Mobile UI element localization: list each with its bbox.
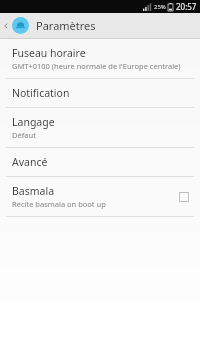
button[interactable]: Back xyxy=(0,13,12,38)
button[interactable]: Notification xyxy=(0,79,200,107)
staticText: 20:57 xyxy=(176,1,197,12)
staticText: Recite basmala on boot up xyxy=(12,199,106,209)
staticText: GMT+0100 (heure normale de l'Europe cent… xyxy=(12,61,181,71)
staticText: Langage xyxy=(12,115,55,129)
staticText: Défaut xyxy=(12,130,36,140)
button[interactable]: Basmala xyxy=(0,177,200,216)
staticText: Paramètres xyxy=(36,18,96,33)
staticText: Fuseau horaire xyxy=(12,46,86,60)
staticText: Basmala xyxy=(12,184,55,198)
button[interactable]: Fuseau horaire xyxy=(0,39,200,78)
button[interactable]: Avancé xyxy=(0,148,200,176)
staticText: Avancé xyxy=(12,155,48,169)
staticText: 25% xyxy=(154,3,166,11)
button[interactable]: Langage xyxy=(0,108,200,147)
button[interactable]: Toggle Basmala xyxy=(177,190,190,203)
staticText: Notification xyxy=(12,86,70,100)
